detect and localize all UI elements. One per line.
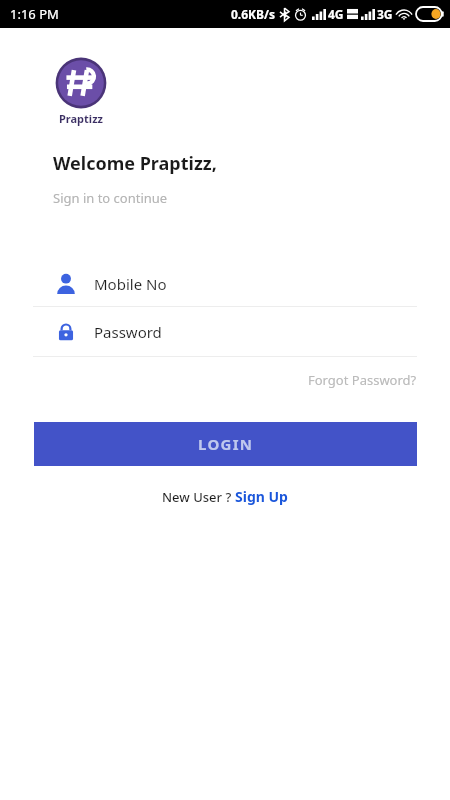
staticText: 1:16 PM bbox=[10, 5, 59, 23]
staticText: Praptizz bbox=[59, 111, 103, 126]
staticText: 4G bbox=[328, 6, 344, 22]
button[interactable]: Sign Up bbox=[235, 487, 288, 506]
button[interactable]: Password bbox=[0, 321, 450, 343]
staticText: Password bbox=[94, 322, 162, 342]
staticText: New User ? bbox=[162, 488, 235, 506]
button[interactable]: Forgot Password? bbox=[306, 365, 419, 395]
button[interactable]: LOGIN bbox=[34, 422, 417, 466]
staticText: Sign in to continue bbox=[53, 189, 168, 207]
staticText: 0.6KB/s bbox=[231, 6, 276, 22]
button[interactable]: Praptizz logo bbox=[54, 56, 108, 110]
staticText: Welcome Praptizz, bbox=[53, 151, 217, 176]
staticText: LOGIN bbox=[198, 434, 254, 454]
button[interactable]: Mobile No bbox=[0, 273, 450, 294]
staticText: Mobile No bbox=[94, 274, 167, 294]
staticText: 3G bbox=[377, 6, 393, 22]
